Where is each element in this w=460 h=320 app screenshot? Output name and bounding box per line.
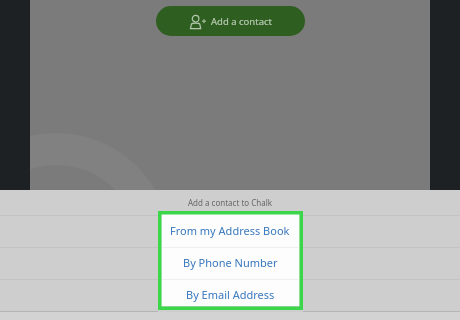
button[interactable]: By Email Address xyxy=(0,278,460,310)
button[interactable]: From my Address Book xyxy=(0,214,460,246)
staticText: From my Address Book xyxy=(170,223,290,238)
staticText: Add a contact to Chalk xyxy=(188,197,273,208)
button[interactable]: Add a contact xyxy=(156,6,305,36)
button[interactable]: By Phone Number xyxy=(0,246,460,278)
staticText: Add a contact xyxy=(211,15,272,28)
other: Highlighted options xyxy=(158,211,303,310)
staticText: By Phone Number xyxy=(183,255,278,270)
staticText: By Email Address xyxy=(186,287,275,302)
